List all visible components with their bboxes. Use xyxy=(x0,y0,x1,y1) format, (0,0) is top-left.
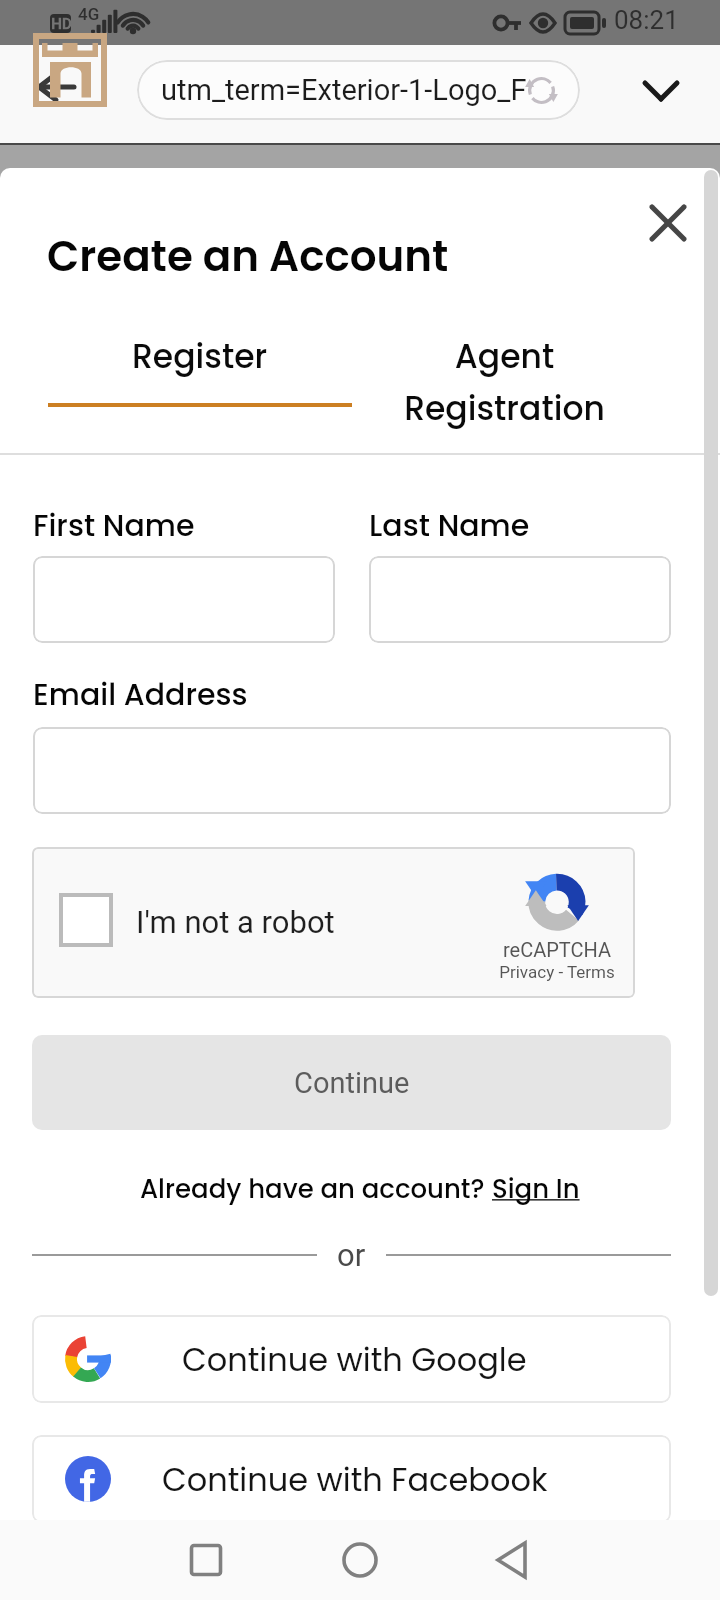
staticText: reCAPTCHA xyxy=(487,938,627,961)
staticText: First Name xyxy=(33,505,195,547)
staticText: I'm not a robot xyxy=(136,904,335,940)
staticText: 4G xyxy=(78,4,100,24)
button[interactable] xyxy=(369,556,671,643)
button[interactable]: Site logo xyxy=(33,33,107,107)
button[interactable]: Show more xyxy=(632,62,690,120)
staticText: Last Name xyxy=(369,505,530,547)
button[interactable]: Continue xyxy=(32,1035,671,1130)
button[interactable]: Close xyxy=(640,195,696,251)
button[interactable] xyxy=(33,727,671,814)
staticText: HD xyxy=(51,15,72,33)
staticText: Register xyxy=(132,333,268,379)
button[interactable]: Register xyxy=(48,333,352,379)
button[interactable]: Back xyxy=(20,55,84,119)
staticText: Continue with Facebook xyxy=(162,1457,548,1502)
staticText: or xyxy=(337,1237,366,1273)
staticText: Email Address xyxy=(33,674,248,716)
staticText: Privacy - Terms xyxy=(487,962,627,982)
staticText: Continue xyxy=(294,1066,410,1100)
button[interactable]: Back xyxy=(472,1520,552,1600)
staticText: 08:21 xyxy=(614,5,679,35)
button[interactable]: Agent Registration xyxy=(352,333,656,432)
staticText: Continue with Google xyxy=(182,1337,527,1382)
staticText: Create an Account xyxy=(47,227,449,286)
button[interactable] xyxy=(33,556,335,643)
button[interactable]: Continue with Google xyxy=(32,1315,671,1403)
button[interactable]: Continue with Facebook xyxy=(32,1435,671,1523)
staticText: Already have an account? xyxy=(140,1171,492,1207)
staticText: Sign In xyxy=(492,1171,580,1207)
button[interactable]: I am not a robot xyxy=(59,893,113,947)
staticText: Agent Registration xyxy=(404,333,605,432)
button[interactable]: utm_term=Exterior-1-Logo_F xyxy=(137,60,580,120)
button[interactable]: Recent apps xyxy=(166,1520,246,1600)
staticText: utm_term=Exterior-1-Logo_F xyxy=(161,73,527,107)
button[interactable]: Sign In xyxy=(492,1171,580,1207)
button[interactable]: Home xyxy=(320,1520,400,1600)
